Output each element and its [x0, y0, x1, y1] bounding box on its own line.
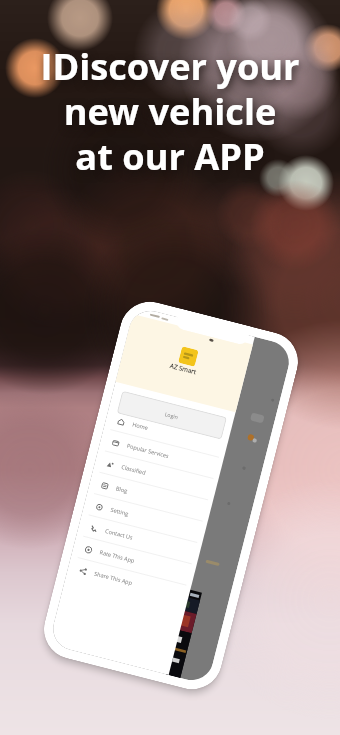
button[interactable]: Popular Services	[98, 428, 224, 480]
staticText: AZ Smart	[169, 361, 197, 376]
button[interactable]: Rate This App	[71, 535, 196, 587]
button[interactable]: Contact Us	[76, 513, 202, 565]
button[interactable]: Login	[117, 391, 227, 440]
button[interactable]: Share This App	[65, 556, 191, 608]
staticText: IDiscover your new vehicle at our APP	[0, 41, 340, 180]
button[interactable]: Classified	[93, 450, 218, 501]
staticText: Share This App	[93, 570, 133, 587]
button[interactable]: Setting	[82, 492, 207, 544]
button[interactable]: Home	[103, 407, 229, 459]
staticText: Blog	[115, 484, 129, 495]
staticText: Popular Services	[126, 442, 171, 460]
staticText: Home	[131, 420, 149, 432]
staticText: Rate This App	[99, 548, 136, 565]
staticText: Classified	[120, 463, 147, 477]
staticText: Setting	[110, 506, 130, 518]
staticText: Contact Us	[104, 527, 134, 542]
staticText: Login	[164, 410, 179, 420]
button[interactable]: Blog	[87, 471, 213, 523]
